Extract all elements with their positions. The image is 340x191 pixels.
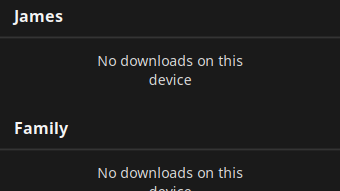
- button[interactable]: Family: [0, 112, 340, 148]
- button[interactable]: James: [0, 0, 340, 36]
- staticText: Family: [14, 117, 68, 139]
- staticText: No downloads on this device: [97, 51, 243, 89]
- staticText: James: [14, 5, 63, 27]
- staticText: No downloads on this device: [97, 163, 243, 191]
